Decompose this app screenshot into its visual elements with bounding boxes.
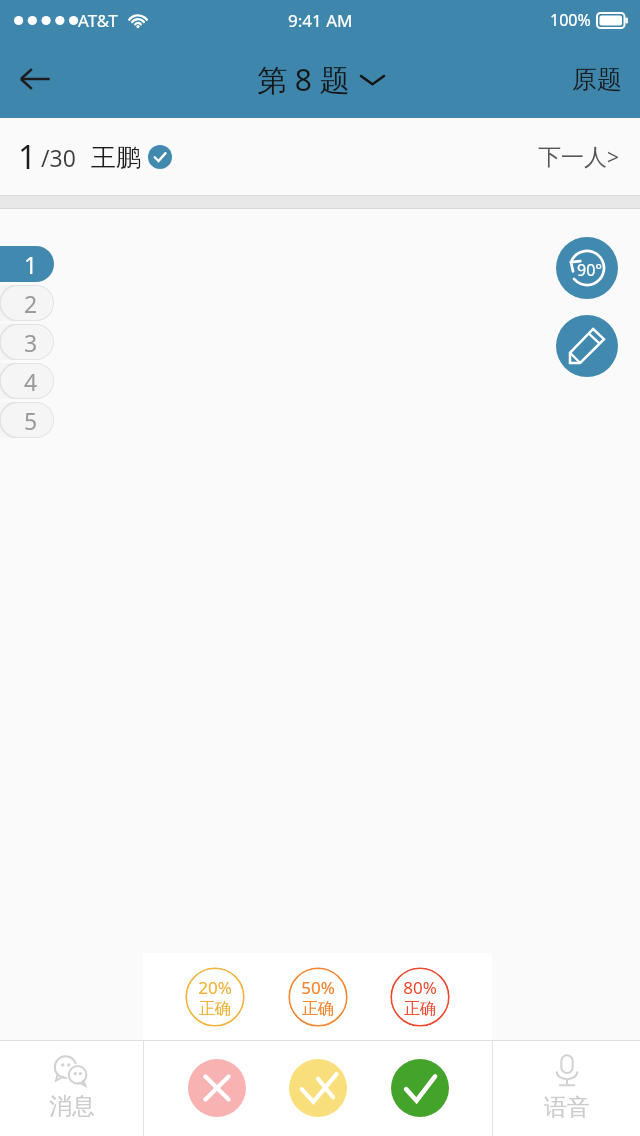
button[interactable]: Mark partially correct <box>289 1059 347 1117</box>
button[interactable]: 原题 <box>572 64 622 95</box>
button[interactable]: 20% <box>185 967 245 1027</box>
staticText: 5 <box>24 405 38 436</box>
staticText: 第 8 题 <box>257 59 350 100</box>
button[interactable]: 3 <box>0 324 54 360</box>
staticText: 2 <box>24 288 38 319</box>
staticText: AT&T <box>78 9 118 32</box>
button[interactable]: Mark correct <box>391 1059 449 1117</box>
staticText: 9:41 AM <box>288 9 353 32</box>
staticText: 90° <box>577 259 603 281</box>
button[interactable]: 下一人 <box>538 143 620 172</box>
button[interactable]: 1 <box>18 135 172 179</box>
staticText: 王鹏 <box>91 142 141 173</box>
staticText: /30 <box>41 142 76 173</box>
staticText: 语音 <box>544 1093 590 1122</box>
staticText: 下一人 <box>538 143 607 172</box>
button[interactable]: Rotate 90 degrees <box>556 237 618 299</box>
button[interactable]: Back <box>6 50 64 108</box>
button[interactable]: 50% <box>288 967 348 1027</box>
button[interactable]: 5 <box>0 402 54 438</box>
staticText: 1 <box>24 249 38 280</box>
staticText: 50% <box>301 976 335 999</box>
button[interactable]: 2 <box>0 285 54 321</box>
staticText: 消息 <box>49 1092 95 1121</box>
staticText: 100% <box>550 9 591 31</box>
button[interactable]: 第 8 题 <box>257 59 384 100</box>
button[interactable]: 消息 <box>0 1040 143 1136</box>
staticText: 20% <box>198 976 232 999</box>
button[interactable]: 4 <box>0 363 54 399</box>
staticText: 正确 <box>302 999 334 1019</box>
staticText: 3 <box>24 327 38 358</box>
button[interactable]: 1 <box>0 246 54 282</box>
staticText: 正确 <box>404 999 436 1019</box>
button[interactable]: Edit <box>556 315 618 377</box>
staticText: 正确 <box>199 999 231 1019</box>
staticText: 4 <box>24 366 38 397</box>
button[interactable]: Mark wrong <box>188 1059 246 1117</box>
staticText: 原题 <box>572 64 622 95</box>
staticText: 80% <box>403 976 437 999</box>
button[interactable]: 80% <box>390 967 450 1027</box>
staticText: 1 <box>18 135 37 179</box>
staticText: > <box>607 143 620 172</box>
button[interactable]: 语音 <box>493 1040 640 1136</box>
